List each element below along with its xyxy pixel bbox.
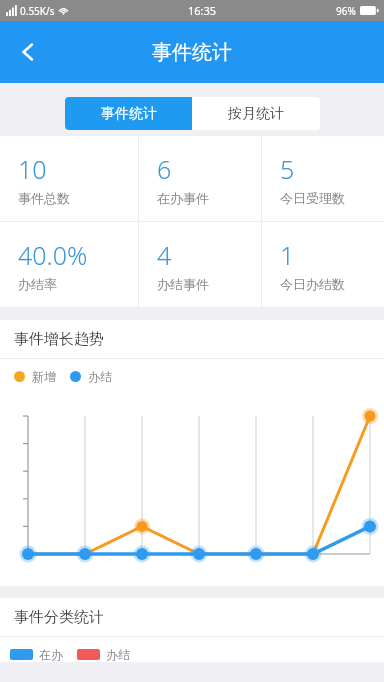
button[interactable]: 5 [262, 136, 384, 221]
staticText: 在办 [39, 647, 63, 662]
staticText: 40.0% [18, 238, 88, 272]
staticText: 5 [280, 152, 295, 186]
staticText: 0.55K/s [20, 4, 55, 18]
button[interactable]: 10 [0, 136, 138, 221]
staticText: 事件总数 [18, 190, 70, 206]
button[interactable]: 1 [262, 222, 384, 307]
staticText: 办结事件 [157, 276, 209, 292]
staticText: 1 [280, 238, 295, 272]
button[interactable]: 事件统计 [65, 97, 192, 130]
button[interactable]: 6 [139, 136, 261, 221]
staticText: 办结 [88, 369, 112, 384]
staticText: 在办事件 [157, 190, 209, 206]
staticText: 事件分类统计 [14, 608, 104, 627]
button[interactable]: Back [0, 24, 56, 80]
staticText: 新增 [32, 369, 56, 384]
staticText: 事件统计 [101, 105, 157, 123]
staticText: 16:35 [188, 3, 217, 18]
staticText: 按月统计 [228, 105, 284, 123]
staticText: 今日受理数 [280, 190, 345, 206]
staticText: 事件统计 [152, 40, 232, 65]
staticText: 事件增长趋势 [14, 330, 104, 349]
button[interactable]: 4 [139, 222, 261, 307]
button[interactable]: 40.0% [0, 222, 138, 307]
staticText: 10 [18, 152, 47, 186]
staticText: 6 [157, 152, 172, 186]
staticText: 办结率 [18, 276, 57, 292]
staticText: 办结 [106, 647, 130, 662]
staticText: 今日办结数 [280, 276, 345, 292]
staticText: 4 [157, 238, 172, 272]
button[interactable]: 按月统计 [192, 97, 320, 130]
staticText: 96% [336, 4, 356, 18]
